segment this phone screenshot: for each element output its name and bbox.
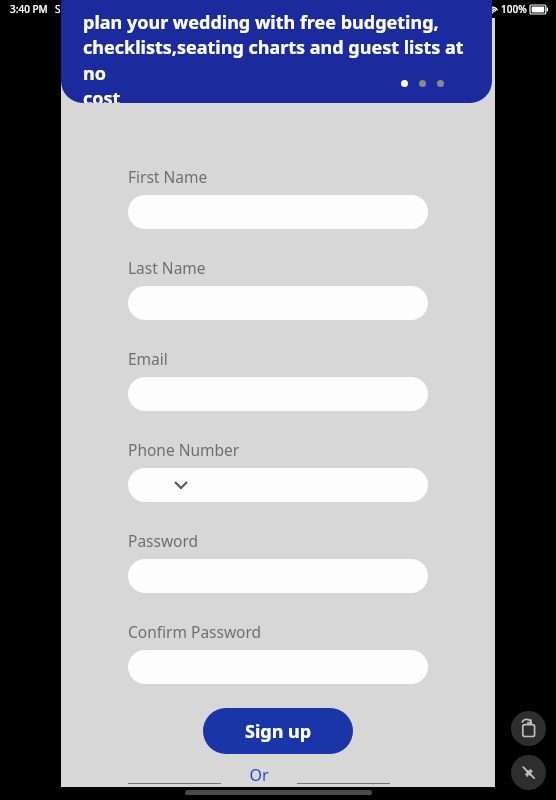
button[interactable] — [128, 195, 428, 229]
staticText: Last Name — [128, 257, 206, 278]
button[interactable]: Sign up — [203, 708, 353, 754]
button[interactable] — [128, 286, 428, 320]
staticText: Password — [128, 530, 199, 551]
button[interactable]: plan your wedding with free budgeting, — [61, 0, 492, 103]
button[interactable] — [128, 468, 428, 502]
staticText: Confirm Password — [128, 621, 262, 642]
staticText: Phone Number — [128, 439, 240, 460]
button[interactable] — [128, 377, 428, 411]
staticText: 100% — [501, 2, 527, 16]
button[interactable]: Screenshot — [511, 711, 546, 746]
staticText: First Name — [128, 166, 208, 187]
staticText: Email — [128, 348, 168, 369]
staticText: plan your wedding with free budgeting, — [83, 10, 439, 35]
button[interactable] — [128, 559, 428, 593]
staticText: checklists,seating charts and guest list… — [83, 35, 468, 86]
staticText: cost — [83, 86, 121, 103]
button[interactable]: Shrink window — [511, 755, 546, 790]
button[interactable] — [128, 650, 428, 684]
staticText: Or — [249, 764, 269, 786]
staticText: Sign up — [245, 719, 312, 744]
staticText: Sat 3 Aug — [55, 2, 100, 16]
staticText: 3:40 PM — [10, 2, 48, 16]
